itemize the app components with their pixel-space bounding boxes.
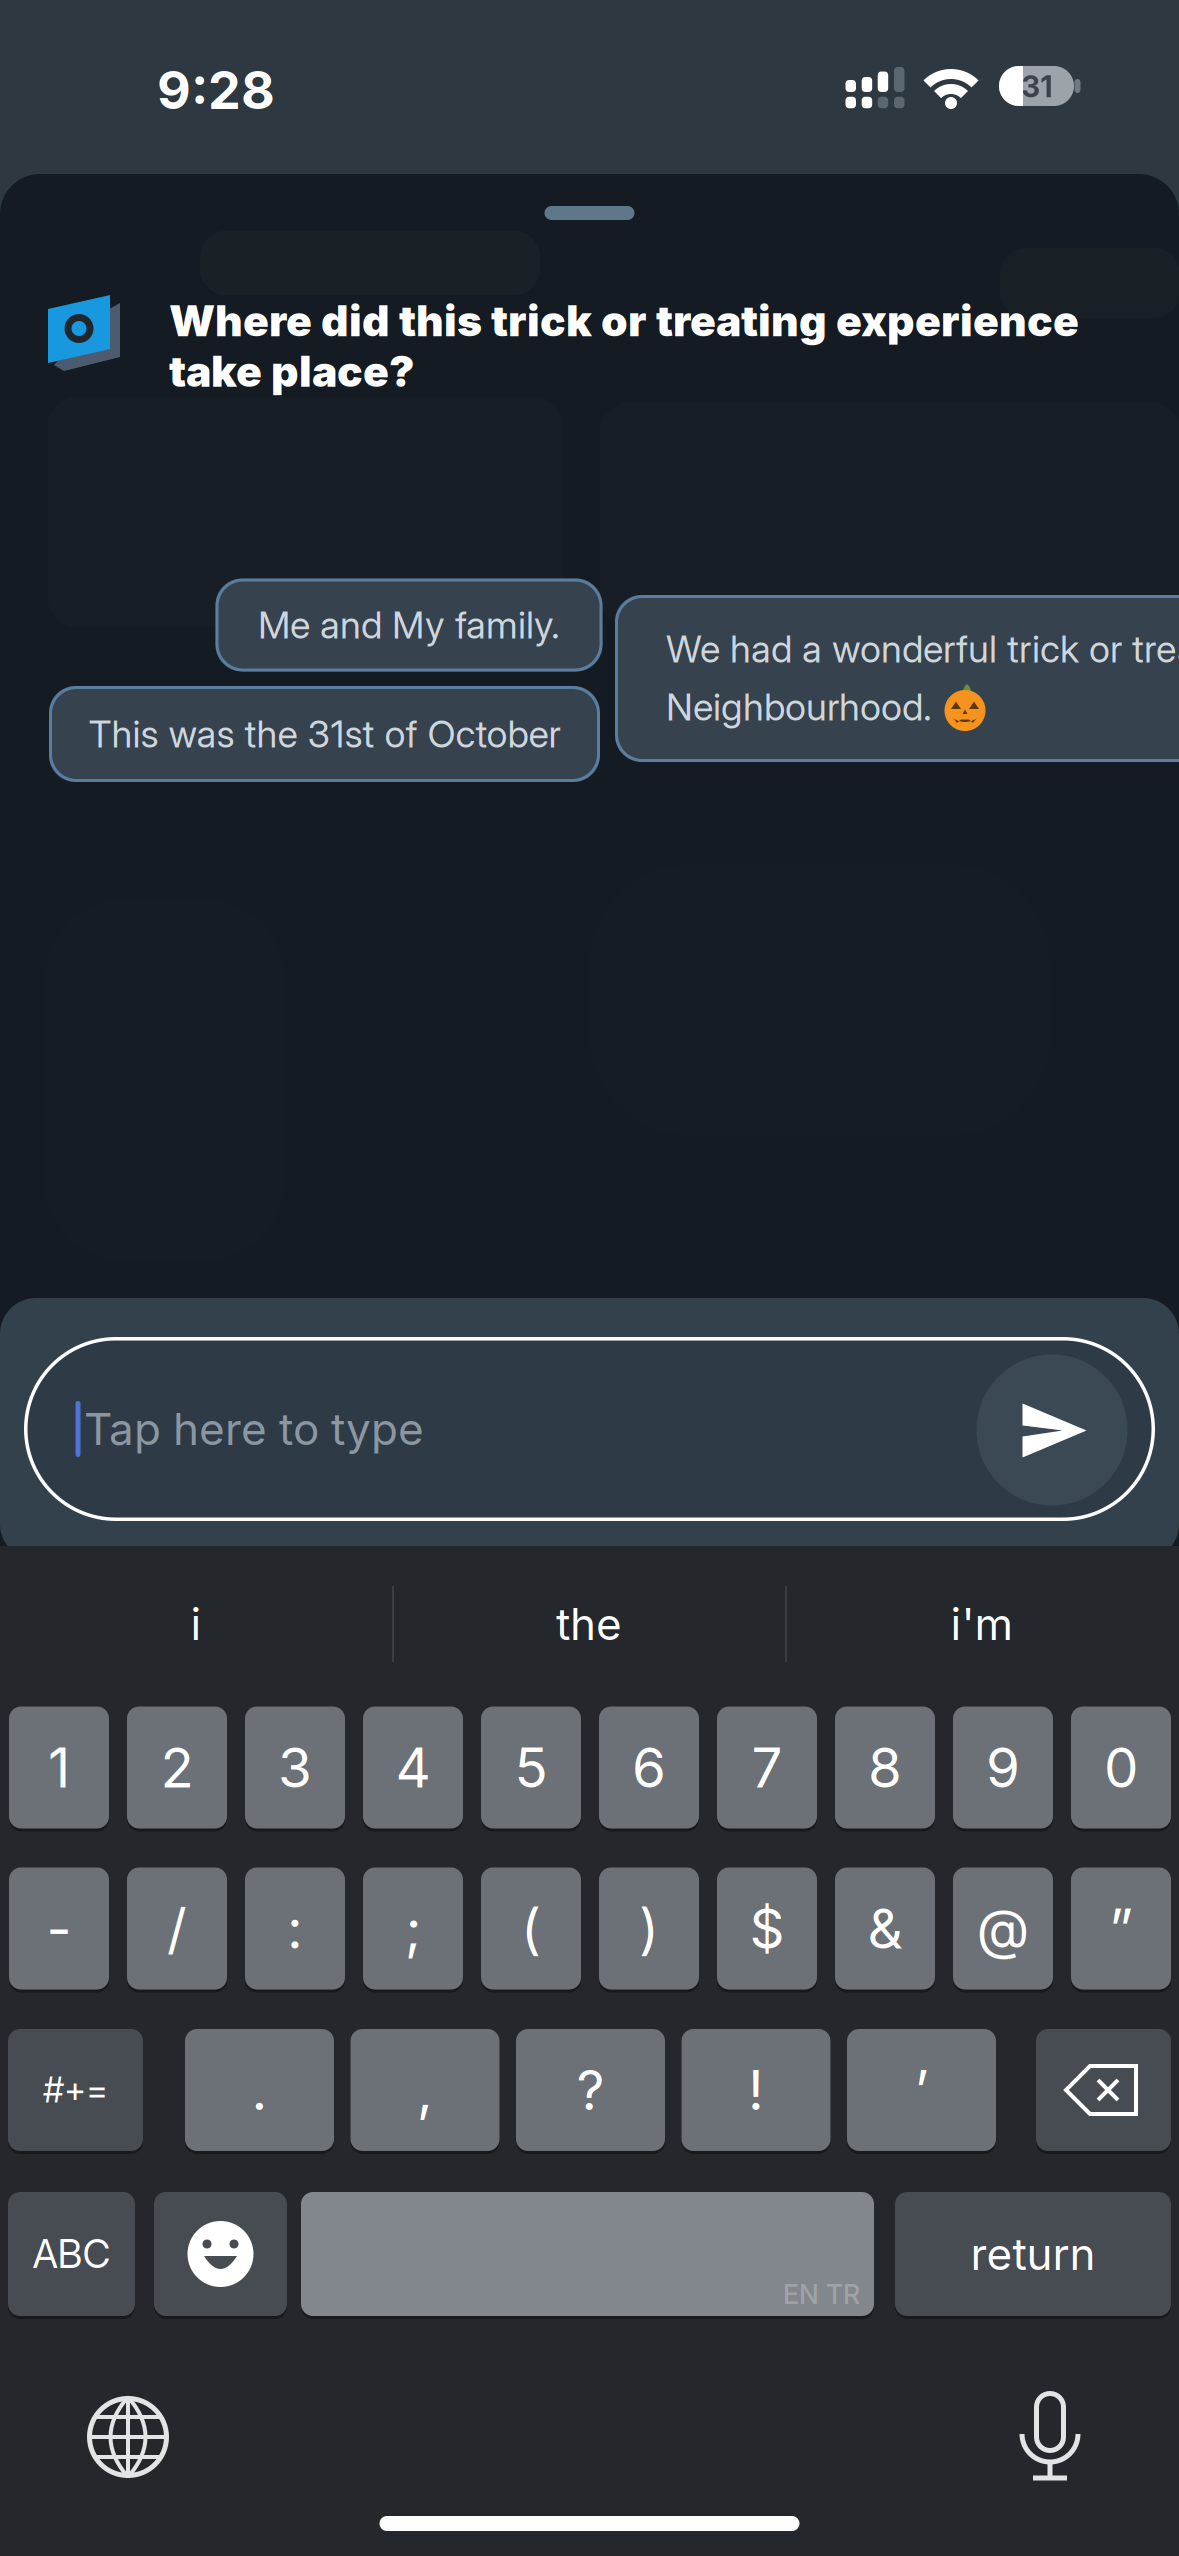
staticText: ”: [1109, 1896, 1133, 1961]
button[interactable]: Send: [976, 1354, 1127, 1505]
staticText: Where did this trick or treating experie…: [169, 296, 1079, 346]
staticText: @: [976, 1896, 1029, 1961]
staticText: 9:28: [157, 59, 275, 121]
staticText: 6: [632, 1735, 666, 1800]
staticText: This was the 31st of October: [88, 712, 560, 756]
staticText: 0: [1104, 1735, 1138, 1800]
staticText: 7: [751, 1735, 782, 1800]
staticText: 2: [160, 1735, 193, 1800]
button[interactable]: 0: [1071, 1705, 1171, 1830]
button[interactable]: (: [481, 1866, 581, 1991]
staticText: !: [748, 2058, 764, 2122]
staticText: i: [190, 1598, 201, 1650]
staticText: /: [167, 1896, 187, 1961]
button[interactable]: !: [681, 2027, 830, 2152]
button[interactable]: ABC: [8, 2190, 135, 2317]
staticText: 31: [1021, 69, 1052, 104]
staticText: Neighbourhood.: [666, 685, 932, 729]
button[interactable]: Tap here to type: [24, 1337, 1155, 1521]
staticText: Me and My family.: [258, 603, 560, 647]
button[interactable]: ”: [1071, 1866, 1171, 1991]
button[interactable]: Delete: [1036, 2027, 1171, 2152]
staticText: &: [867, 1896, 902, 1961]
staticText: 9: [986, 1735, 1020, 1800]
button[interactable]: &: [835, 1866, 935, 1991]
button[interactable]: 1: [9, 1705, 109, 1830]
button[interactable]: 7: [717, 1705, 817, 1830]
button[interactable]: ?: [516, 2027, 665, 2152]
button[interactable]: i'm: [792, 1574, 1172, 1674]
staticText: ): [639, 1896, 659, 1961]
button[interactable]: 3: [245, 1705, 345, 1830]
button[interactable]: 8: [835, 1705, 935, 1830]
staticText: 8: [868, 1735, 902, 1800]
staticText: the: [556, 1598, 622, 1650]
button[interactable]: the: [399, 1574, 779, 1674]
button[interactable]: 5: [481, 1705, 581, 1830]
staticText: #+=: [43, 2070, 108, 2110]
staticText: ;: [405, 1896, 421, 1961]
staticText: :: [287, 1896, 303, 1961]
button[interactable]: $: [717, 1866, 817, 1991]
button[interactable]: Space: [301, 2190, 874, 2317]
button[interactable]: return: [895, 2190, 1171, 2317]
staticText: i'm: [950, 1598, 1013, 1650]
staticText: ,: [417, 2058, 433, 2122]
button[interactable]: ’: [847, 2027, 996, 2152]
button[interactable]: ): [599, 1866, 699, 1991]
button[interactable]: ,: [350, 2027, 499, 2152]
button[interactable]: @: [953, 1866, 1053, 1991]
staticText: ’: [914, 2058, 928, 2122]
button[interactable]: /: [127, 1866, 227, 1991]
staticText: (: [521, 1896, 541, 1961]
button[interactable]: .: [185, 2027, 334, 2152]
staticText: 5: [514, 1735, 547, 1800]
staticText: ?: [576, 2058, 604, 2122]
button[interactable]: Me and My family.: [215, 578, 602, 671]
staticText: return: [970, 2228, 1095, 2280]
staticText: 3: [278, 1735, 312, 1800]
button[interactable]: Next keyboard: [73, 2382, 183, 2492]
button[interactable]: Dictation: [995, 2382, 1105, 2492]
staticText: Tap here to type: [84, 1403, 424, 1455]
button[interactable]: This was the 31st of October: [49, 686, 600, 782]
button[interactable]: -: [9, 1866, 109, 1991]
button[interactable]: i: [6, 1574, 386, 1674]
button[interactable]: 2: [127, 1705, 227, 1830]
button[interactable]: Emoji: [154, 2190, 287, 2317]
staticText: .: [251, 2058, 267, 2122]
button[interactable]: :: [245, 1866, 345, 1991]
staticText: take place?: [169, 346, 415, 396]
staticText: -: [46, 1896, 71, 1961]
button[interactable]: 9: [953, 1705, 1053, 1830]
button[interactable]: 6: [599, 1705, 699, 1830]
staticText: We had a wonderful trick or treating: [666, 627, 1179, 671]
button[interactable]: #+=: [8, 2027, 143, 2152]
staticText: 4: [395, 1735, 430, 1800]
button[interactable]: ;: [363, 1866, 463, 1991]
staticText: 1: [48, 1735, 70, 1800]
staticText: EN TR: [783, 2278, 860, 2310]
button[interactable]: We had a wonderful trick or treating: [615, 595, 1179, 762]
staticText: ABC: [32, 2231, 110, 2277]
button[interactable]: 4: [363, 1705, 463, 1830]
staticText: $: [749, 1896, 784, 1961]
